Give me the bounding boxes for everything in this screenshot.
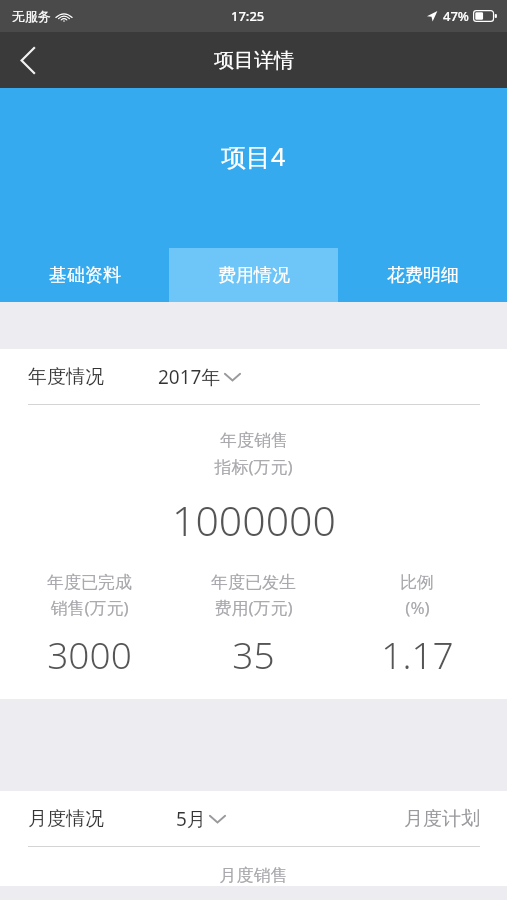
button[interactable]: 2017年	[156, 358, 243, 396]
staticText: 月度计划	[404, 807, 480, 831]
staticText: 月度销售	[0, 865, 507, 886]
staticText: (%)	[405, 596, 430, 619]
staticText: 35	[232, 629, 275, 679]
staticText: 月度情况	[28, 807, 104, 831]
staticText: 3000	[47, 629, 132, 679]
staticText: 47%	[443, 7, 469, 25]
button[interactable]: 月度计划	[404, 801, 480, 837]
staticText: 销售(万元)	[50, 596, 129, 619]
button[interactable]: 费用情况	[169, 248, 338, 302]
staticText: 无服务	[12, 8, 51, 24]
staticText: 费用(万元)	[214, 596, 293, 619]
button[interactable]: 花费明细	[338, 248, 507, 302]
staticText: 年度已发生	[211, 572, 296, 593]
staticText: 年度已完成	[47, 572, 132, 593]
staticText: 17:25	[231, 7, 265, 25]
staticText: 年度销售	[220, 430, 288, 451]
staticText: 费用情况	[218, 264, 290, 287]
button[interactable]: 5月	[174, 800, 228, 838]
staticText: 比例	[400, 572, 434, 593]
staticText: 花费明细	[387, 264, 459, 287]
button[interactable]: 返回	[0, 32, 56, 88]
staticText: 5月	[176, 806, 206, 832]
staticText: 指标(万元)	[214, 455, 293, 478]
staticText: 1.17	[381, 629, 454, 679]
staticText: 项目详情	[214, 48, 294, 73]
staticText: 2017年	[158, 364, 221, 390]
button[interactable]: 基础资料	[0, 248, 169, 302]
staticText: 1000000	[172, 492, 336, 548]
staticText: 年度情况	[28, 365, 104, 389]
staticText: 基础资料	[49, 264, 121, 287]
staticText: 项目4	[221, 139, 286, 173]
